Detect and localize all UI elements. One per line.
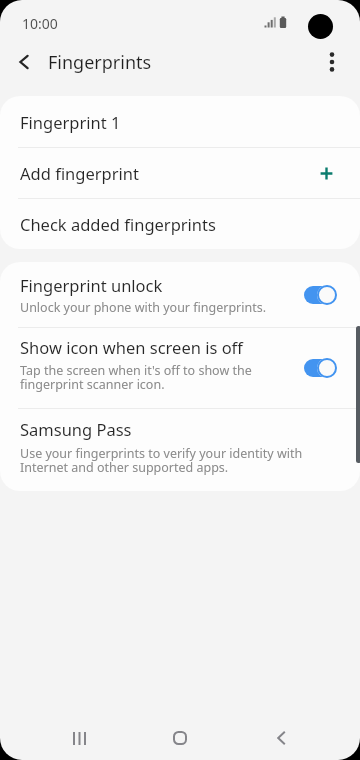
button[interactable] [156, 716, 204, 760]
button[interactable]: Samsung Pass [0, 409, 360, 491]
staticText: Check added fingerprints [20, 213, 216, 235]
staticText: Samsung Pass [20, 418, 132, 440]
staticText: Fingerprint 1 [20, 111, 121, 133]
staticText: Add fingerprint [20, 162, 139, 184]
button[interactable]: Add fingerprint [0, 148, 360, 198]
button[interactable] [4, 42, 44, 82]
button[interactable]: Fingerprint 1 [0, 96, 360, 147]
staticText: Fingerprint unlock [20, 274, 163, 296]
button[interactable] [312, 42, 352, 82]
staticText: Use your fingerprints to verify your ide… [20, 445, 303, 476]
staticText: Unlock your phone with your fingerprints… [20, 299, 267, 316]
button[interactable]: Show icon when screen is off [0, 328, 360, 408]
staticText: Fingerprints [48, 50, 152, 75]
button[interactable] [304, 285, 337, 305]
staticText: Show icon when screen is off [20, 336, 243, 358]
button[interactable] [304, 358, 337, 378]
button[interactable] [55, 716, 103, 760]
button[interactable]: Check added fingerprints [0, 199, 360, 249]
staticText: Tap the screen when it's off to show the… [20, 362, 252, 393]
button[interactable] [257, 716, 305, 760]
button[interactable]: Fingerprint unlock [0, 262, 360, 327]
staticText: 10:00 [22, 14, 58, 33]
